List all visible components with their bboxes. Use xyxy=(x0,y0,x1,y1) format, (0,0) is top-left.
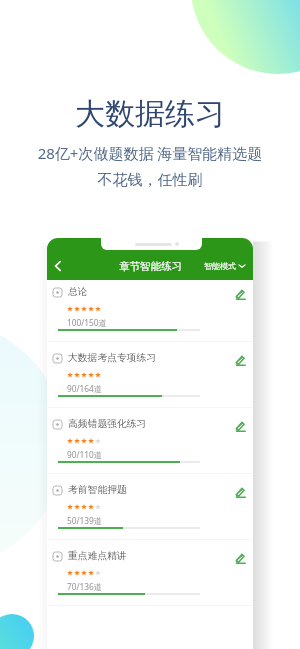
button[interactable]: Back xyxy=(47,255,69,277)
staticText: 考前智能押题 xyxy=(68,484,127,496)
staticText: 章节智能练习 xyxy=(119,260,182,273)
button[interactable]: 重点难点精讲 xyxy=(47,544,253,610)
button[interactable]: Edit xyxy=(231,288,249,300)
staticText: 90/164道 xyxy=(67,383,103,394)
button[interactable]: Edit xyxy=(231,354,249,366)
button[interactable]: 高频错题强化练习 xyxy=(47,412,253,478)
staticText: 90/110道 xyxy=(67,449,103,460)
button[interactable]: Edit xyxy=(231,486,249,498)
staticText: 大数据考点专项练习 xyxy=(68,352,157,364)
staticText: 不花钱，任性刷 xyxy=(0,171,300,190)
button[interactable]: Edit xyxy=(231,552,249,564)
button[interactable]: 考前智能押题 xyxy=(47,478,253,544)
staticText: 70/136道 xyxy=(67,581,103,592)
staticText: 大数据练习 xyxy=(0,95,300,133)
staticText: 28亿+次做题数据 海量智能精选题 xyxy=(0,143,300,163)
button[interactable]: 大数据考点专项练习 xyxy=(47,346,253,412)
staticText: 总论 xyxy=(68,286,88,298)
staticText: 智能模式 xyxy=(204,261,236,271)
staticText: 高频错题强化练习 xyxy=(68,418,147,430)
button[interactable]: 智能模式 xyxy=(204,261,253,271)
staticText: 100/150道 xyxy=(67,317,107,328)
button[interactable]: 总论 xyxy=(47,280,253,346)
staticText: 重点难点精讲 xyxy=(68,550,127,562)
staticText: 50/139道 xyxy=(67,515,103,526)
button[interactable]: Edit xyxy=(231,420,249,432)
